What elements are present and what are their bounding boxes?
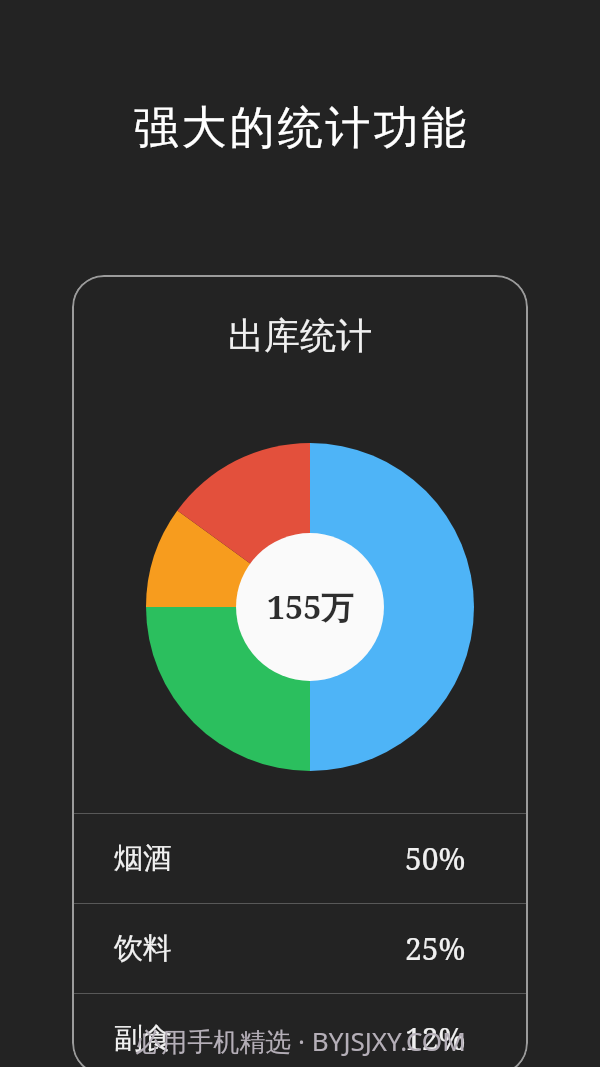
staticText: 25% (405, 928, 466, 969)
staticText: 烟酒 (114, 840, 172, 877)
button[interactable]: 烟酒 (72, 814, 528, 903)
staticText: 155万 (267, 585, 354, 629)
staticText: 必用手机精选 · BYJSJXY.COM (135, 1023, 466, 1059)
staticText: 12% (405, 1018, 466, 1059)
button[interactable]: 饮料 (72, 904, 528, 993)
staticText: 强大的统计功能 (132, 100, 468, 157)
staticText: 50% (405, 838, 466, 879)
staticText: 出库统计 (228, 313, 372, 358)
button[interactable]: 副食 (72, 994, 528, 1067)
staticText: 饮料 (114, 930, 172, 967)
staticText: 副食 (114, 1020, 172, 1057)
